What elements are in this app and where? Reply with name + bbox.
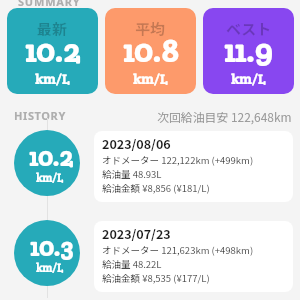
staticText: 2023/08/06 [102,134,171,152]
staticText: 10.8 [123,30,179,71]
staticText: 10.3 [30,231,73,264]
staticText: km/L [231,70,266,88]
staticText: オドメーター 121,623km (+498km) [102,243,254,257]
staticText: 給油量 48.22L [102,257,162,271]
staticText: 2023/07/23 [102,224,171,242]
button[interactable]: 10.2 [14,130,80,196]
button[interactable]: 10.3 [14,220,80,286]
staticText: SUMMARY [18,0,81,9]
staticText: 給油金額 ¥8,856 (¥181/L) [102,181,210,195]
staticText: 11.9 [224,30,273,71]
staticText: km/L [35,70,70,88]
staticText: ベスト [226,18,272,40]
staticText: HISTORY [14,108,66,123]
staticText: 10.2 [29,141,73,174]
staticText: 給油金額 ¥8,535 (¥177/L) [102,271,210,285]
staticText: オドメーター 122,122km (+499km) [102,153,254,167]
staticText: km/L [133,70,168,88]
staticText: km/L [36,261,63,275]
staticText: 最新 [37,18,68,40]
button[interactable]: 2023/08/06 [94,131,293,202]
staticText: km/L [36,171,63,185]
staticText: 10.2 [25,30,81,71]
button[interactable]: 2023/07/23 [94,221,293,292]
button[interactable]: 最新 [7,8,98,94]
staticText: 給油量 48.93L [102,167,162,181]
button[interactable]: ベスト [203,8,294,94]
staticText: 次回給油目安 122,648km [157,108,292,125]
staticText: 平均 [135,18,166,40]
button[interactable]: 平均 [105,8,196,94]
